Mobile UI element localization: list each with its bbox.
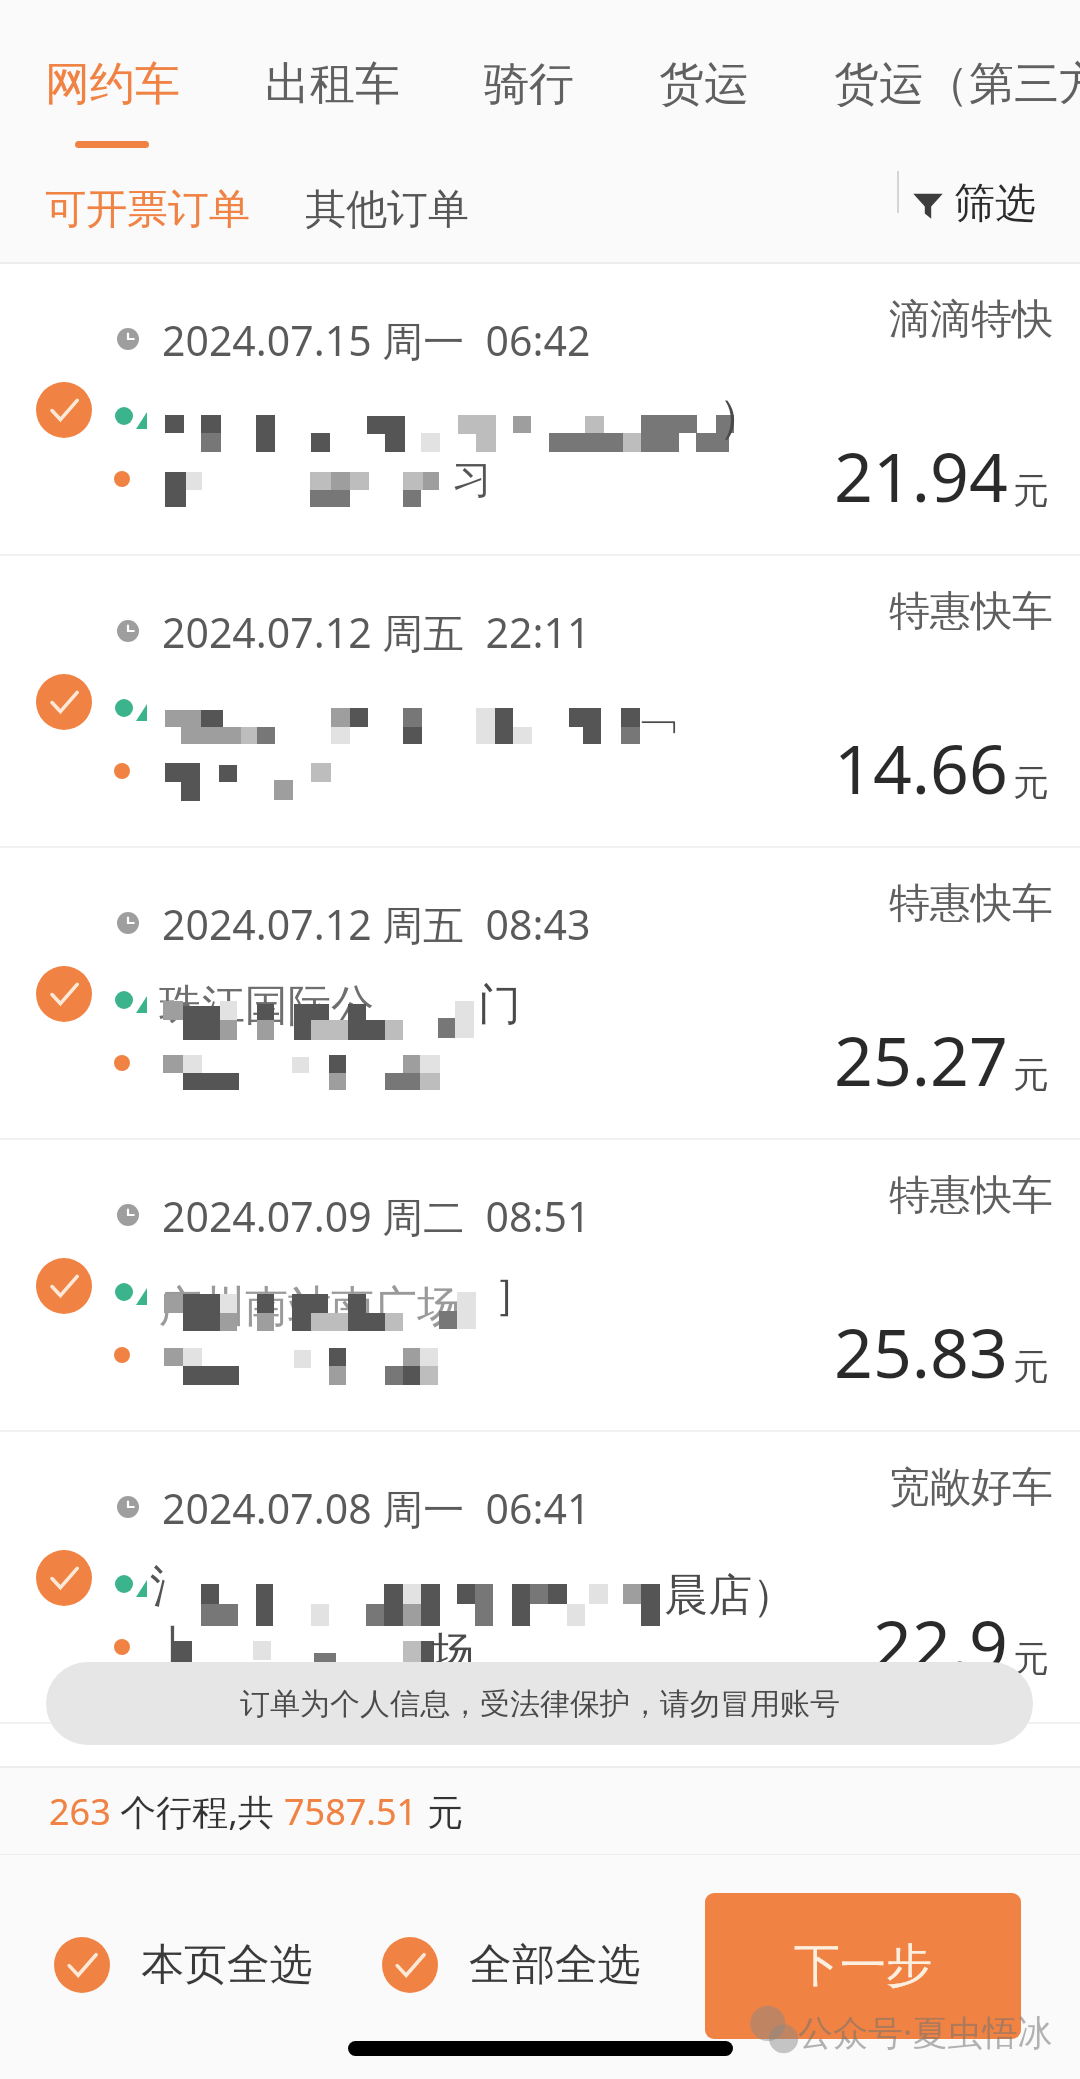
staticText: 筛选 xyxy=(954,178,1036,230)
button[interactable]: 骑行 xyxy=(484,40,574,150)
staticText: 可开票订单 xyxy=(45,184,250,236)
staticText: 263 xyxy=(49,1787,111,1836)
staticText: 特惠快车 xyxy=(889,1170,1053,1222)
staticText: 其他订单 xyxy=(305,184,469,236)
button[interactable] xyxy=(0,848,1080,1140)
button[interactable]: 筛选 xyxy=(912,178,1036,230)
button[interactable]: 网约车 xyxy=(45,40,180,150)
staticText: ） xyxy=(718,388,764,446)
staticText: 个行程,共 xyxy=(111,1787,284,1836)
staticText: 全部全选 xyxy=(469,1938,641,1992)
staticText: 出租车 xyxy=(265,56,400,113)
staticText: 下一步 xyxy=(794,1937,932,1995)
staticText: 场 xyxy=(431,1626,474,1680)
staticText: 25.83 xyxy=(834,1305,1008,1398)
button[interactable]: 可开票订单 xyxy=(45,184,250,236)
button[interactable]: 全部全选 xyxy=(382,1936,641,1993)
button[interactable]: 货运 xyxy=(659,40,749,150)
staticText: 元 xyxy=(1013,760,1049,805)
staticText: 门 xyxy=(478,978,521,1032)
staticText: 货运 xyxy=(659,56,749,113)
staticText: ﹁ xyxy=(640,694,680,744)
button[interactable]: Select order xyxy=(36,1550,92,1606)
button[interactable]: Select order xyxy=(36,966,92,1022)
staticText: 21.94 xyxy=(834,429,1008,522)
button[interactable]: 下一步 xyxy=(705,1893,1021,2039)
staticText: 本页全选 xyxy=(141,1938,313,1992)
staticText: 网约车 xyxy=(45,56,180,113)
button[interactable]: Select order xyxy=(36,1258,92,1314)
staticText: 广州南站南广场 xyxy=(159,1280,460,1334)
staticText: 珠江国际公 xyxy=(159,979,374,1033)
staticText: 14.66 xyxy=(834,721,1008,814)
staticText: 2024.07.08 周一 06:41 xyxy=(162,1480,591,1536)
button[interactable]: 货运（第三方 xyxy=(834,40,1080,150)
button[interactable]: 本页全选 xyxy=(54,1936,313,1993)
staticText: 货运（第三方 xyxy=(834,56,1080,113)
staticText: 特惠快车 xyxy=(889,878,1053,930)
staticText: 2024.07.09 周二 08:51 xyxy=(162,1188,591,1244)
staticText: 元 xyxy=(1013,1344,1049,1389)
staticText: 骑行 xyxy=(484,56,574,113)
button[interactable] xyxy=(0,1432,1080,1724)
button[interactable]: Select order xyxy=(36,674,92,730)
button[interactable]: 其他订单 xyxy=(305,184,469,236)
button[interactable] xyxy=(0,264,1080,556)
staticText: 习 xyxy=(452,454,492,504)
staticText: 宽敞好车 xyxy=(889,1462,1053,1514)
staticText: 22.9 xyxy=(873,1597,1008,1690)
staticText: ］ xyxy=(494,1268,537,1322)
staticText: 25.27 xyxy=(834,1013,1008,1106)
button[interactable]: Select order xyxy=(36,382,92,438)
staticText: 元 xyxy=(1013,1052,1049,1097)
staticText: 滴滴特快 xyxy=(889,294,1053,346)
staticText: 氵 xyxy=(150,1560,193,1614)
staticText: 元 xyxy=(1013,468,1049,513)
button[interactable] xyxy=(0,1140,1080,1432)
staticText: 订单为个人信息，受法律保护，请勿冒用账号 xyxy=(240,1685,840,1723)
staticText: 元 xyxy=(1013,1636,1049,1681)
staticText: 元 xyxy=(418,1787,464,1836)
staticText: 7587.51 xyxy=(284,1787,418,1836)
button[interactable]: 出租车 xyxy=(265,40,400,150)
staticText: 晨店） xyxy=(664,1568,796,1623)
button[interactable] xyxy=(0,556,1080,848)
staticText: 特惠快车 xyxy=(889,586,1053,638)
staticText: 2024.07.12 周五 08:43 xyxy=(162,896,591,952)
staticText: 丨 xyxy=(152,1620,195,1674)
staticText: 公众号·夏虫悟冰 xyxy=(798,2008,1053,2056)
staticText: 2024.07.12 周五 22:11 xyxy=(162,604,591,660)
staticText: 2024.07.15 周一 06:42 xyxy=(162,312,591,368)
